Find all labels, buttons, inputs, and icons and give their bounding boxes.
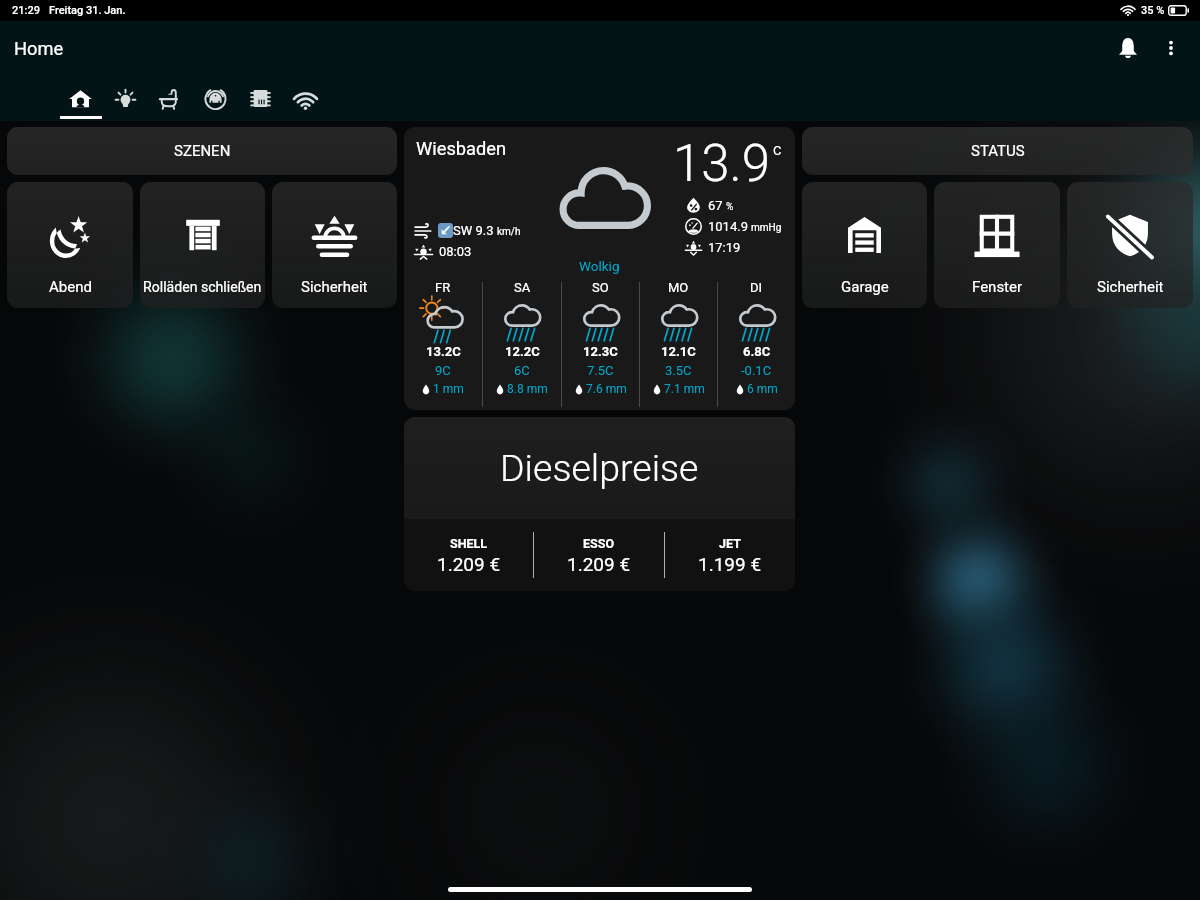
staticText: 7.1 mm (664, 382, 705, 396)
staticText: 1.209 € (437, 553, 501, 575)
staticText: 1.209 € (567, 553, 631, 575)
staticText: C (773, 143, 782, 158)
staticText: Freitag 31. Jan. (49, 4, 126, 17)
staticText: 1014.9 (708, 219, 748, 234)
staticText: Rolläden schließen (143, 279, 262, 296)
staticText: SZENEN (174, 142, 231, 160)
staticText: 21:29 (12, 4, 40, 17)
staticText: 7.5C (587, 363, 614, 378)
staticText: 6 mm (747, 382, 778, 396)
staticText: DI (750, 280, 763, 295)
button[interactable]: Sicherheit (272, 182, 397, 308)
button[interactable]: STATUS (802, 127, 1193, 175)
button[interactable]: Home (58, 75, 103, 121)
staticText: STATUS (971, 142, 1025, 160)
staticText: 7.6 mm (586, 382, 627, 396)
button[interactable]: Wiesbaden (404, 127, 795, 410)
staticText: Wiesbaden (416, 138, 507, 159)
button[interactable]: Garage (802, 182, 927, 308)
staticText: % (726, 201, 734, 213)
staticText: SHELL (450, 536, 488, 551)
staticText: MO (668, 280, 689, 295)
staticText: 1 mm (433, 382, 464, 396)
staticText: Abend (49, 278, 92, 296)
staticText: SA (514, 280, 531, 295)
button[interactable]: Notifications (1106, 26, 1150, 70)
staticText: 13.9 (673, 134, 771, 194)
staticText: JET (719, 536, 741, 551)
staticText: 6.8C (743, 344, 771, 359)
button[interactable]: More options (1150, 27, 1192, 69)
staticText: Dieselpreise (500, 446, 699, 490)
button[interactable]: Fenster (934, 182, 1060, 308)
staticText: 35 % (1141, 4, 1165, 17)
button[interactable]: Dieselpreise (404, 417, 795, 591)
button[interactable]: Lights (103, 75, 148, 121)
staticText: -0.1C (741, 363, 772, 378)
staticText: 1.199 € (698, 553, 762, 575)
staticText: FR (435, 280, 451, 295)
staticText: 3.5C (665, 363, 692, 378)
staticText: 12.1C (661, 344, 696, 359)
button[interactable]: Bathroom (148, 75, 193, 121)
staticText: 13.2C (426, 344, 461, 359)
staticText: 67 (708, 198, 723, 213)
staticText: ESSO (583, 536, 615, 551)
button[interactable]: Rolläden schließen (140, 182, 265, 308)
staticText: Sicherheit (301, 278, 368, 296)
button[interactable]: Sicherheit (1067, 182, 1193, 308)
staticText: 12.3C (583, 344, 618, 359)
staticText: Wolkig (579, 258, 620, 274)
staticText: Home (14, 38, 64, 59)
button[interactable]: Devices (238, 75, 283, 121)
staticText: 08:03 (439, 244, 472, 259)
staticText: mmHg (751, 222, 782, 234)
staticText: SW 9.3 (453, 223, 494, 238)
staticText: Fenster (972, 278, 1023, 296)
staticText: Garage (841, 278, 889, 296)
staticText: 9C (435, 363, 451, 378)
staticText: SO (592, 280, 609, 295)
staticText: 12.2C (505, 344, 540, 359)
button[interactable]: Vacuum (193, 75, 238, 121)
staticText: 6C (514, 363, 530, 378)
button[interactable]: SZENEN (7, 127, 397, 175)
staticText: 8.8 mm (507, 382, 548, 396)
staticText: km/h (497, 226, 521, 238)
staticText: Sicherheit (1097, 278, 1164, 296)
button[interactable]: Abend (7, 182, 133, 308)
staticText: 17:19 (708, 240, 741, 255)
button[interactable]: Network (283, 75, 328, 121)
